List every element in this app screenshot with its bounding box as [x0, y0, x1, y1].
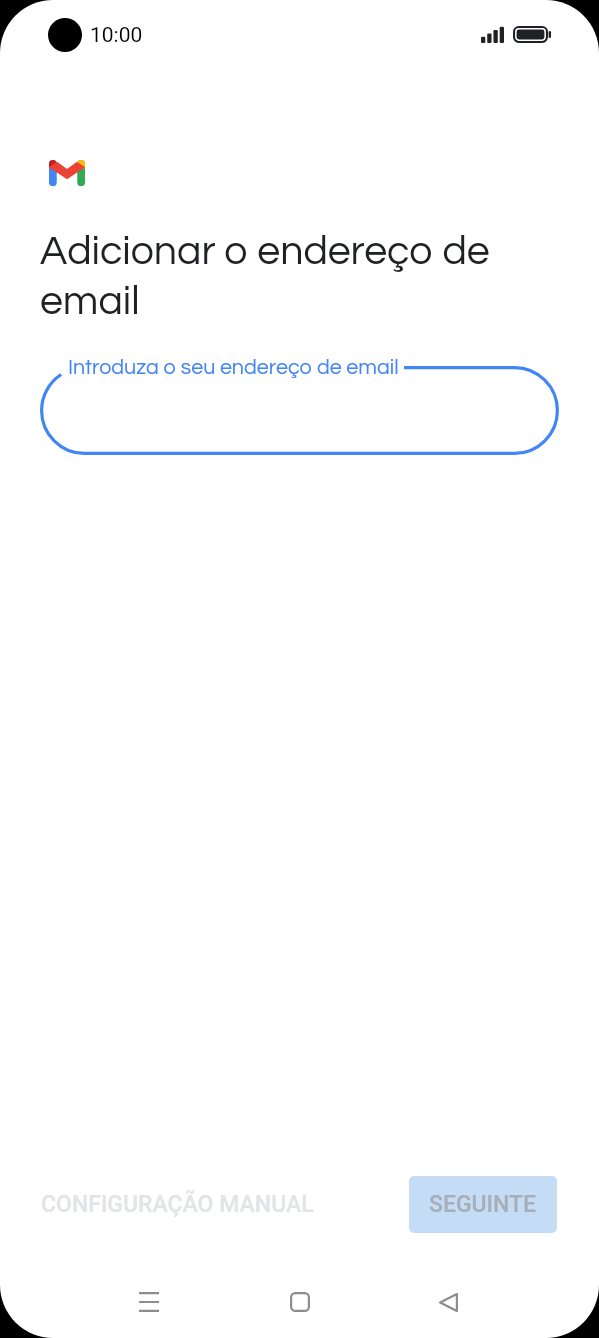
button[interactable]: Back — [417, 1271, 479, 1333]
button[interactable]: CONFIGURAÇÃO MANUAL — [29, 1179, 326, 1230]
button[interactable]: SEGUINTE — [409, 1176, 557, 1233]
staticText: 10:00 — [90, 23, 143, 48]
staticText: Adicionar o endereço de email — [40, 230, 521, 322]
staticText: SEGUINTE — [429, 1191, 537, 1218]
button[interactable]: Introduza o seu endereço de email — [40, 366, 559, 455]
button[interactable]: Home — [269, 1271, 331, 1333]
staticText: Introduza o seu endereço de email — [68, 356, 399, 378]
staticText: CONFIGURAÇÃO MANUAL — [41, 1191, 314, 1218]
button[interactable]: Recents — [118, 1271, 180, 1333]
